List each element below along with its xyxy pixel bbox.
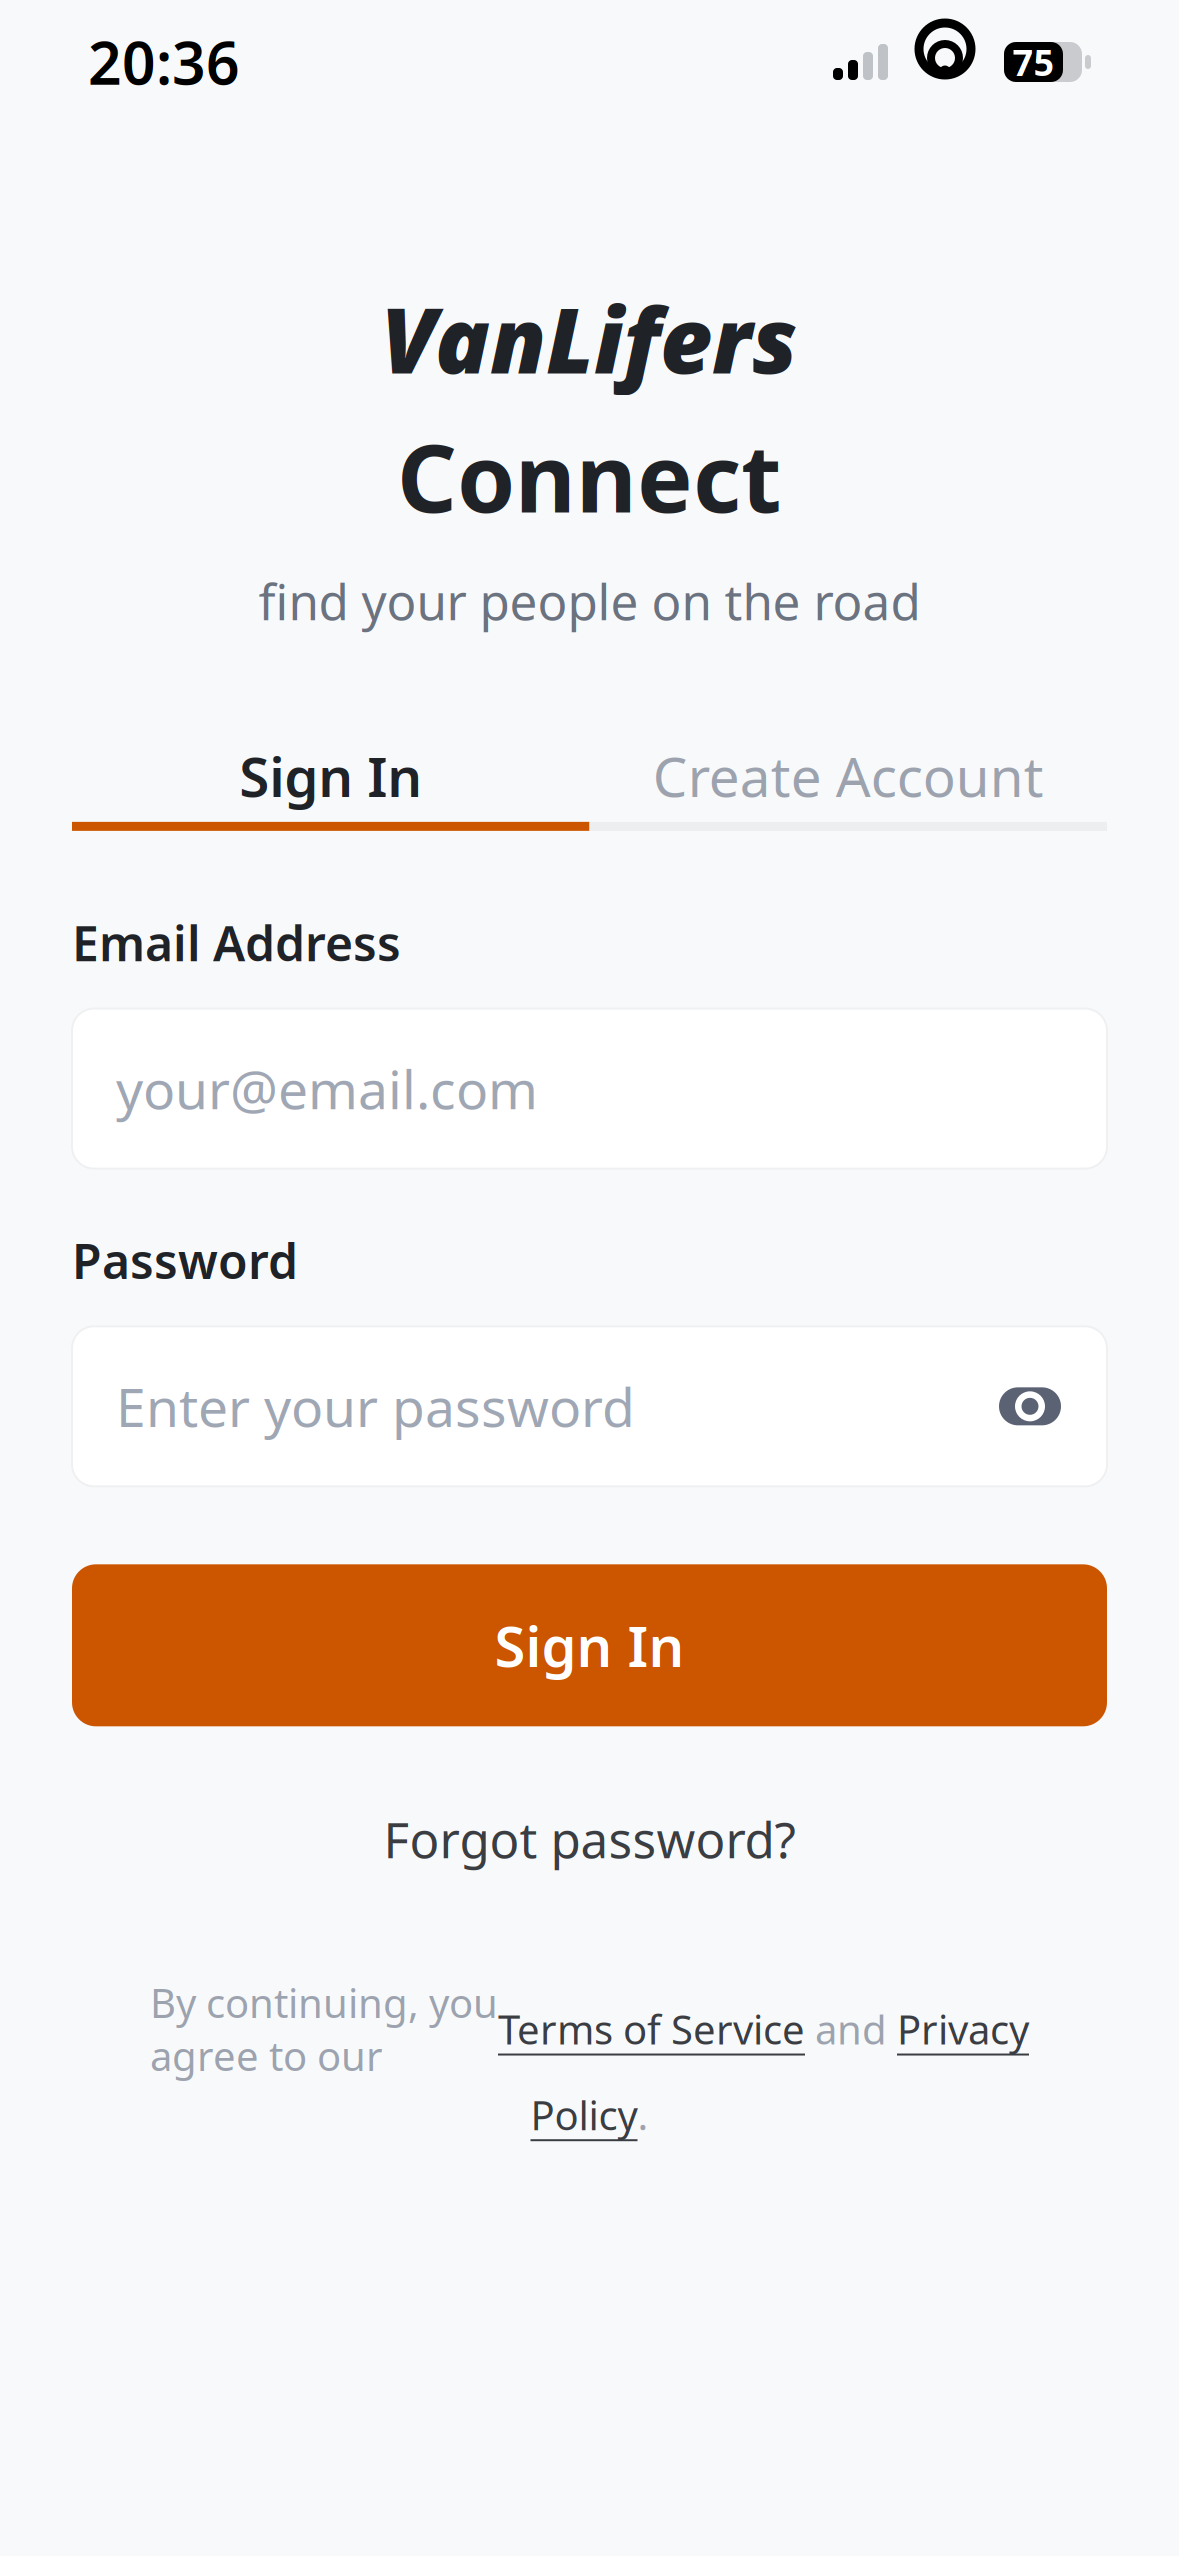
staticText: Privacy <box>897 2002 1029 2055</box>
staticText: Email Address <box>72 911 401 975</box>
staticText: Policy <box>530 2088 637 2141</box>
button[interactable]: Forgot password? <box>343 1792 835 1886</box>
button[interactable]: Show password <box>997 1384 1063 1428</box>
staticText: 75 <box>1012 38 1054 86</box>
staticText: Terms of Service <box>498 2002 805 2055</box>
button[interactable]: Privacy <box>897 2002 1029 2055</box>
staticText: Forgot password? <box>383 1806 795 1872</box>
button[interactable]: Policy <box>530 2088 637 2141</box>
button[interactable]: Sign In <box>72 1564 1107 1726</box>
staticText: and <box>805 2002 897 2055</box>
staticText: your@email.com <box>116 1053 538 1124</box>
staticText: VanLifers <box>381 278 798 398</box>
staticText: Sign In <box>494 1608 684 1683</box>
staticText: Connect <box>397 414 782 538</box>
staticText: Enter your password <box>116 1371 635 1442</box>
button[interactable]: Terms of Service <box>498 2002 805 2055</box>
staticText: By continuing, you agree to our <box>150 1976 498 2082</box>
staticText: . <box>637 2088 648 2141</box>
staticText: 20:36 <box>88 23 240 101</box>
button[interactable]: Create Account <box>589 730 1107 822</box>
button[interactable]: Sign In <box>72 730 589 822</box>
staticText: find your people on the road <box>258 568 920 634</box>
staticText: Create Account <box>653 740 1044 812</box>
staticText: Password <box>72 1229 298 1292</box>
staticText: Sign In <box>239 740 422 812</box>
